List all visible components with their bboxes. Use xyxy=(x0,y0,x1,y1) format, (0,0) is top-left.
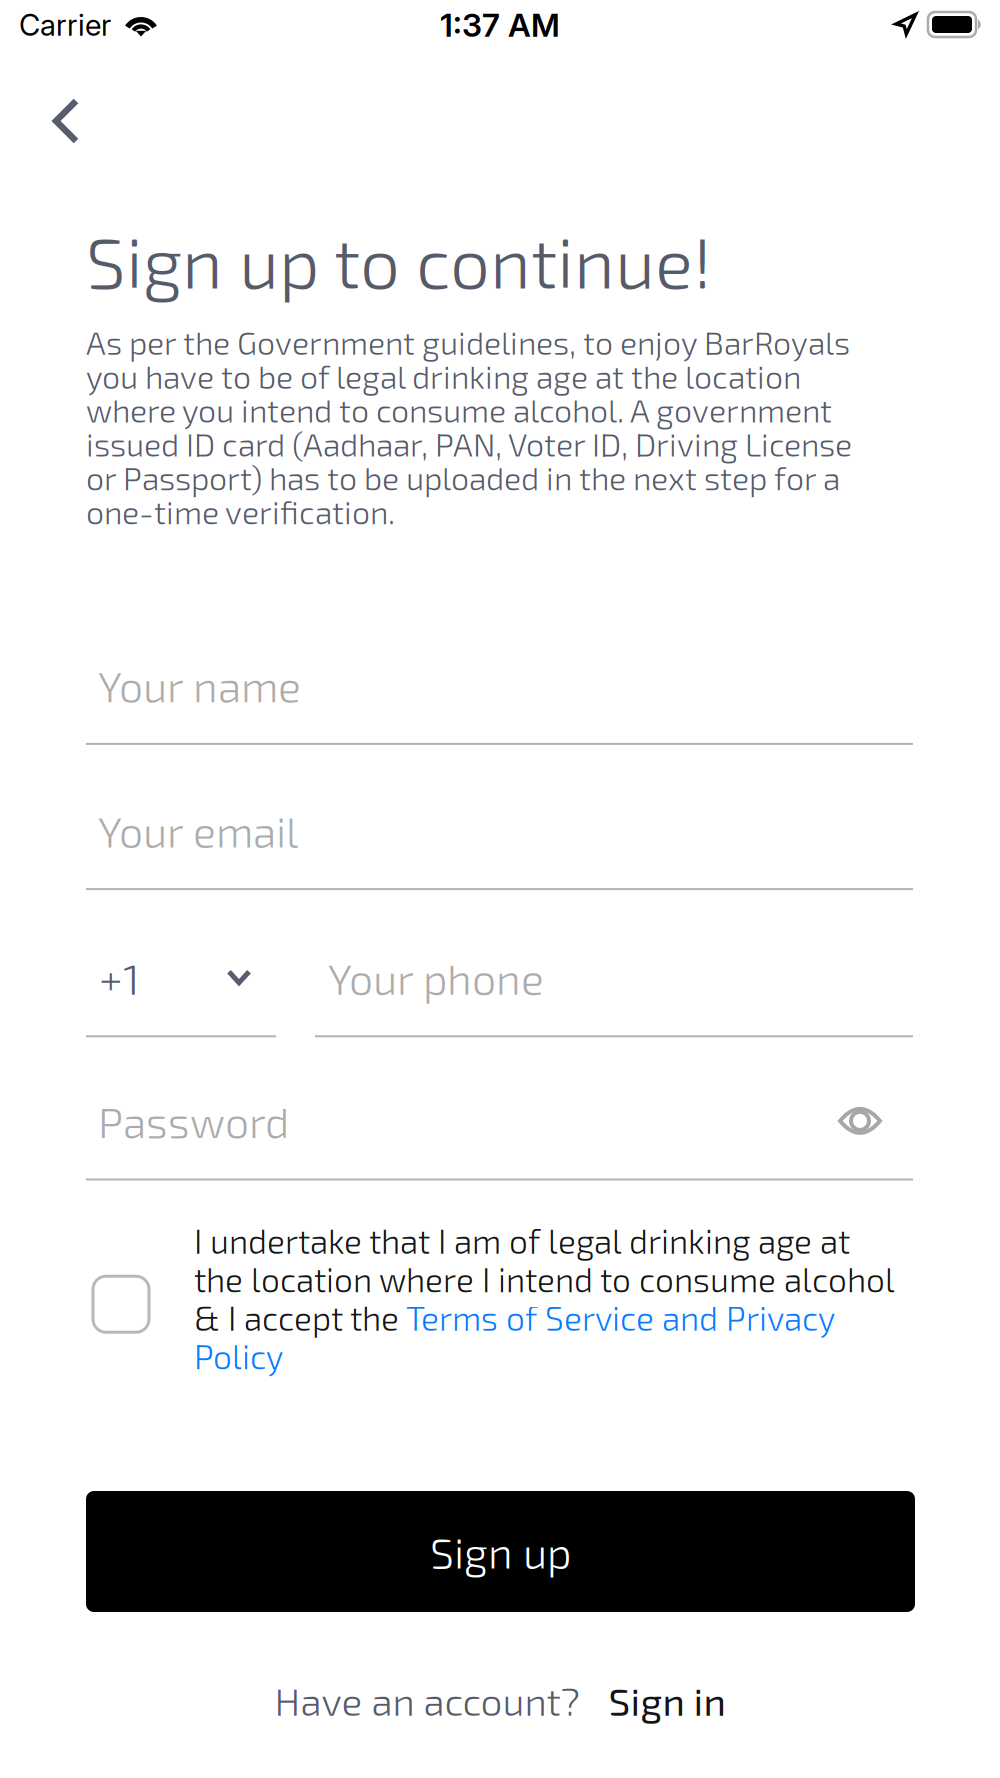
staticText: As per the Government guidelines, to enj… xyxy=(86,323,852,531)
staticText: Have an account? xyxy=(274,1677,580,1723)
staticText: Carrier xyxy=(19,7,111,43)
staticText: Sign in xyxy=(608,1677,725,1723)
button[interactable]: Show password xyxy=(838,1106,882,1136)
staticText: +1 xyxy=(99,952,140,1003)
staticText: Password xyxy=(98,1095,289,1146)
staticText: Your phone xyxy=(328,952,544,1003)
staticText: Sign up xyxy=(430,1526,571,1577)
button[interactable]: Sign in xyxy=(608,1677,725,1723)
button[interactable]: I undertake that I am of legal drinking … xyxy=(0,1220,894,1376)
button[interactable]: Sign up xyxy=(86,1491,915,1612)
staticText: 1:37 AM xyxy=(440,6,560,44)
staticText: I undertake that I am of legal drinking … xyxy=(194,1220,894,1376)
staticText: Sign up to continue! xyxy=(86,218,712,303)
staticText: Your name xyxy=(98,660,301,711)
button[interactable]: Back xyxy=(13,56,119,186)
staticText: Your email xyxy=(98,805,298,856)
